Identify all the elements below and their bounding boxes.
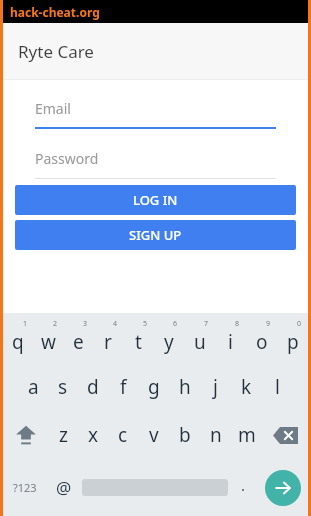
staticText: Password [35,149,99,168]
button[interactable]: 1 [3,313,33,363]
button[interactable]: 3 [63,313,93,363]
staticText: hack-cheat.org [10,4,100,20]
staticText: b [179,422,191,448]
staticText: h [179,374,191,400]
button[interactable]: Backspace [262,411,308,459]
staticText: 4 [113,319,118,329]
button[interactable]: 8 [215,313,246,363]
staticText: o [256,329,268,355]
button[interactable]: 9 [246,313,277,363]
staticText: e [73,329,84,355]
button[interactable]: 5 [123,313,153,363]
button[interactable]: 0 [277,313,308,363]
staticText: k [241,374,252,400]
staticText: y [164,329,174,355]
staticText: SIGN UP [129,226,182,244]
staticText: 3 [83,319,88,329]
staticText: z [59,422,68,448]
button[interactable]: j [200,363,231,411]
staticText: 0 [297,319,302,329]
staticText: r [104,329,112,355]
staticText: c [118,422,128,448]
button[interactable]: 2 [33,313,63,363]
staticText: x [88,422,99,448]
button[interactable]: l [262,363,293,411]
staticText: LOG IN [133,191,178,209]
staticText: t [135,329,142,355]
button[interactable]: h [169,363,200,411]
staticText: 5 [143,319,148,329]
staticText: 9 [266,319,271,329]
button[interactable]: m [231,411,262,459]
staticText: . [241,475,246,495]
staticText: q [12,329,24,355]
button[interactable]: s [48,363,78,411]
button[interactable]: x [78,411,108,459]
staticText: l [275,374,280,400]
staticText: Ryte Care [18,40,94,63]
staticText: m [238,422,256,448]
staticText: j [213,374,218,400]
button[interactable]: 6 [153,313,184,363]
staticText: d [87,374,99,400]
button[interactable]: k [231,363,262,411]
button[interactable]: a [18,363,48,411]
staticText: ?123 [13,480,37,495]
button[interactable]: @ [47,459,80,516]
staticText: n [210,422,222,448]
staticText: 6 [173,319,178,329]
staticText: 8 [235,319,240,329]
button[interactable]: . [230,459,257,516]
button[interactable]: g [138,363,169,411]
button[interactable]: f [108,363,138,411]
staticText: Email [35,99,71,118]
button[interactable]: n [200,411,231,459]
button[interactable]: 7 [184,313,215,363]
button[interactable]: Enter [265,470,301,506]
staticText: p [287,329,299,355]
button[interactable]: z [48,411,78,459]
staticText: 1 [23,319,28,329]
staticText: i [228,329,233,355]
button[interactable]: Password [35,149,276,179]
staticText: a [28,374,39,400]
staticText: w [41,329,56,355]
staticText: 2 [53,319,58,329]
button[interactable]: Shift [3,411,48,459]
button[interactable]: LOG IN [15,185,296,215]
staticText: u [194,329,206,355]
button[interactable]: v [138,411,169,459]
staticText: @ [56,476,72,499]
button[interactable]: Email [35,99,276,129]
staticText: f [120,374,127,400]
staticText: s [58,374,68,400]
button[interactable]: ?123 [3,459,47,516]
staticText: 7 [204,319,209,329]
button[interactable]: b [169,411,200,459]
button[interactable]: 4 [93,313,123,363]
button[interactable]: SIGN UP [15,220,296,250]
button[interactable]: c [108,411,138,459]
staticText: g [148,374,160,400]
staticText: v [149,422,159,448]
button[interactable]: d [78,363,108,411]
